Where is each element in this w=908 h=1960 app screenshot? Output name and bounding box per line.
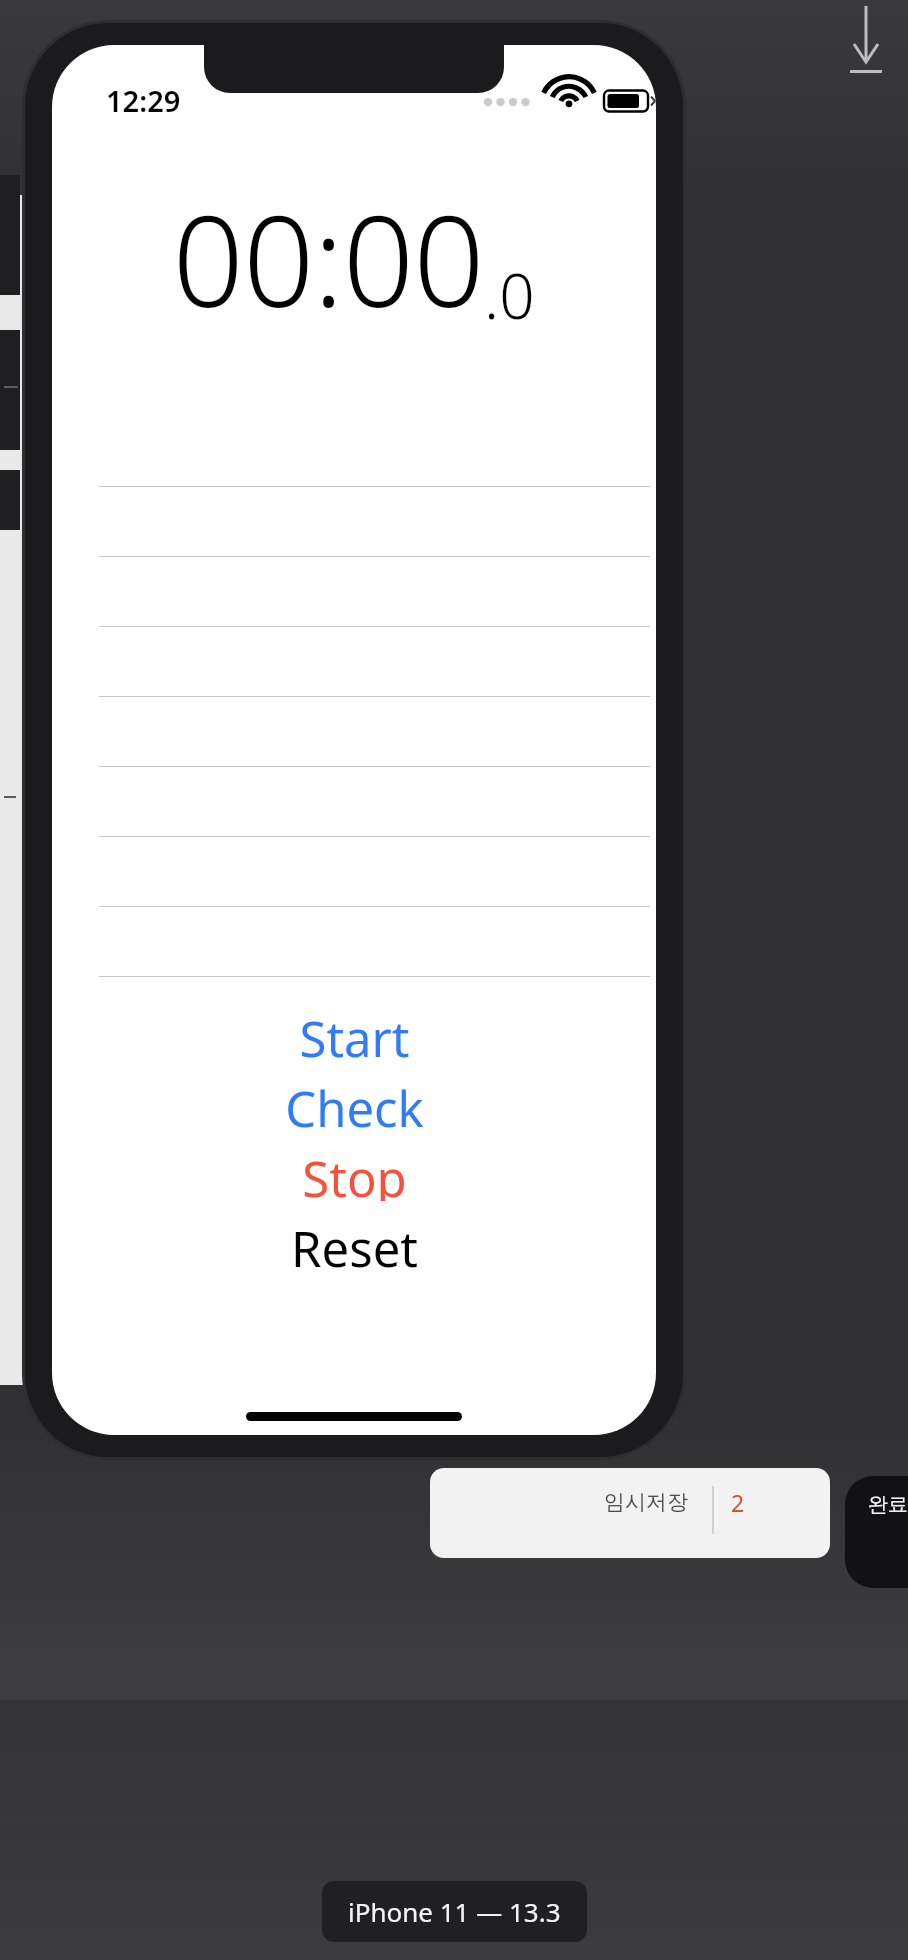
button[interactable]: Start: [52, 1005, 656, 1061]
button[interactable]: [52, 417, 656, 487]
button[interactable]: Reset: [52, 1215, 656, 1271]
button[interactable]: Check: [52, 1075, 656, 1131]
button[interactable]: Stop: [52, 1145, 656, 1201]
staticText: Reset: [291, 1215, 418, 1271]
button[interactable]: [52, 627, 656, 697]
staticText: 임시저장: [604, 1489, 688, 1515]
button[interactable]: [52, 767, 656, 837]
staticText: Check: [285, 1075, 424, 1131]
staticText: iPhone 11 — 13.3: [348, 1894, 561, 1929]
staticText: 2: [731, 1487, 745, 1518]
button[interactable]: [52, 487, 656, 557]
staticText: 00:00: [173, 173, 484, 343]
staticText: .0: [484, 253, 535, 337]
button[interactable]: [52, 907, 656, 977]
button[interactable]: [52, 837, 656, 907]
staticText: 12:29: [106, 81, 181, 120]
staticText: Start: [299, 1005, 410, 1061]
button[interactable]: [52, 557, 656, 627]
staticText: 완료: [868, 1492, 908, 1517]
button[interactable]: [52, 697, 656, 767]
staticText: Stop: [302, 1145, 407, 1201]
